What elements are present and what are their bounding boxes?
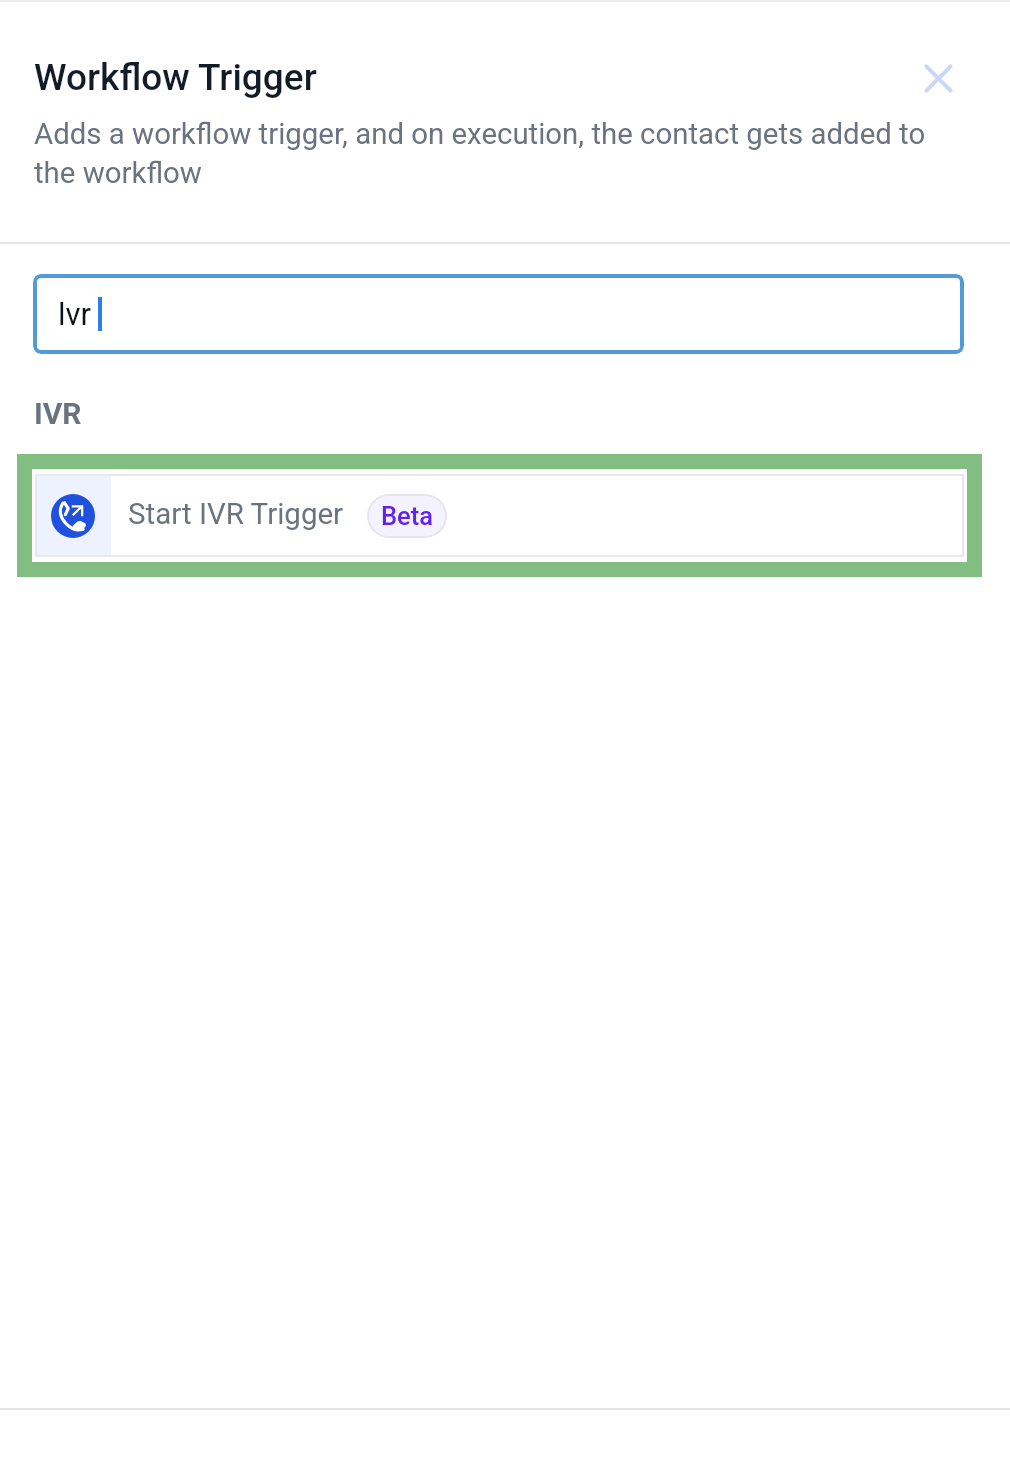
staticText: Start IVR Trigger — [128, 497, 344, 532]
staticText: Adds a workflow trigger, and on executio… — [34, 113, 939, 191]
button[interactable]: Start IVR Trigger — [35, 474, 964, 557]
button[interactable]: lvr — [33, 274, 964, 354]
staticText: IVR — [34, 396, 82, 431]
staticText: Workflow Trigger — [34, 56, 317, 99]
staticText: lvr — [58, 296, 92, 332]
staticText: Beta — [381, 501, 433, 531]
button[interactable]: Close — [908, 48, 968, 108]
